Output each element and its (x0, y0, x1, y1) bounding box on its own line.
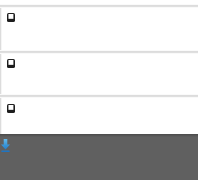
button[interactable]: Download (1, 139, 10, 152)
button[interactable]: List item 1 (0, 8, 198, 50)
button[interactable]: List item 3 (0, 98, 198, 134)
button[interactable]: List item 2 (0, 54, 198, 94)
